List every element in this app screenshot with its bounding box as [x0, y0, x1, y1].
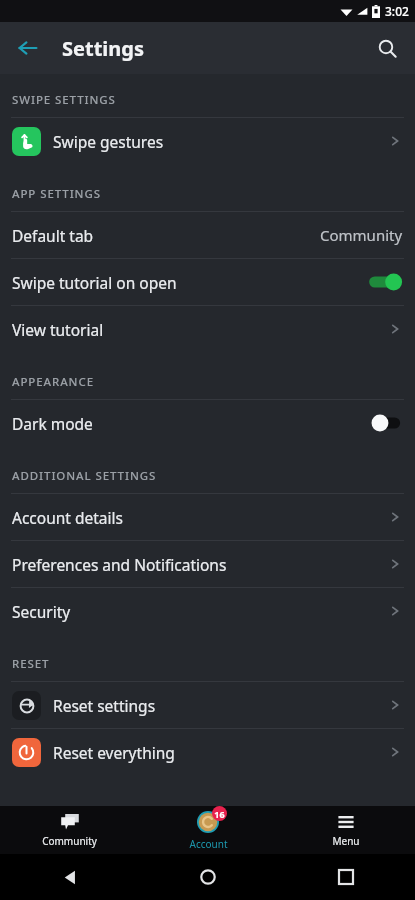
button[interactable]: Swipe gestures [0, 118, 415, 164]
staticText: Dark mode [12, 413, 367, 434]
staticText: Reset everything [53, 742, 387, 763]
staticText: Preferences and Notifications [12, 554, 387, 575]
staticText: RESET [12, 656, 50, 672]
button[interactable]: Default tab [0, 212, 415, 258]
staticText: 16 [214, 808, 225, 820]
staticText: ADDITIONAL SETTINGS [12, 468, 157, 484]
staticText: Community [42, 834, 97, 848]
staticText: APPEARANCE [12, 374, 94, 390]
staticText: View tutorial [12, 319, 387, 340]
staticText: Swipe gestures [53, 131, 387, 152]
staticText: SWIPE SETTINGS [12, 92, 116, 108]
staticText: Reset settings [53, 695, 387, 716]
staticText: Account details [12, 507, 387, 528]
button[interactable]: Search [365, 26, 409, 70]
button[interactable]: 16 [139, 806, 277, 854]
staticText: Community [320, 225, 403, 245]
button[interactable]: Swipe tutorial on open [0, 259, 415, 305]
button[interactable]: Home [139, 854, 277, 900]
staticText: APP SETTINGS [12, 186, 101, 202]
button[interactable]: Reset settings [0, 682, 415, 728]
button[interactable]: Back [6, 26, 50, 70]
button[interactable]: Account details [0, 494, 415, 540]
button[interactable]: Reset everything [0, 729, 415, 775]
staticText: Account [189, 837, 228, 851]
button[interactable]: Recent apps [277, 854, 415, 900]
staticText: Swipe tutorial on open [12, 272, 367, 293]
button[interactable] [367, 273, 403, 291]
button[interactable]: Menu [277, 806, 415, 854]
button[interactable] [367, 414, 403, 432]
button[interactable]: Community [0, 806, 139, 854]
button[interactable]: Back [0, 854, 139, 900]
button[interactable]: Dark mode [0, 400, 415, 446]
staticText: Default tab [12, 225, 320, 246]
staticText: 3:02 [385, 3, 409, 19]
staticText: Security [12, 601, 387, 622]
button[interactable]: Preferences and Notifications [0, 541, 415, 587]
staticText: Menu [332, 834, 360, 848]
staticText: Settings [62, 35, 144, 62]
button[interactable]: View tutorial [0, 306, 415, 352]
button[interactable]: Security [0, 588, 415, 634]
